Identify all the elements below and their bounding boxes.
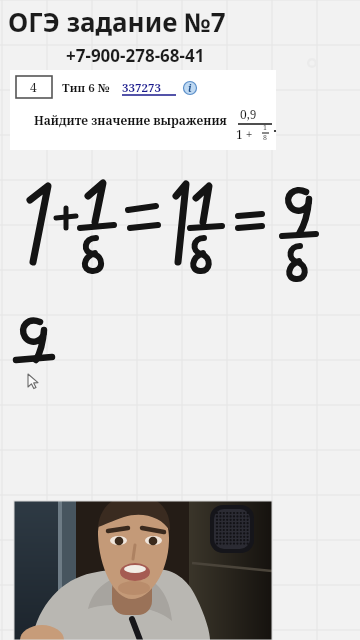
- button[interactable]: ОГЭ задание №7 урок: [0, 0, 360, 640]
